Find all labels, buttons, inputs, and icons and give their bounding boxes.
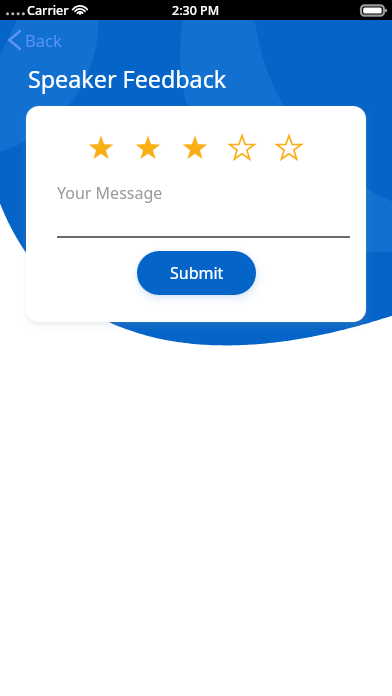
staticText: 2:30 PM bbox=[172, 2, 220, 19]
button[interactable]: Submit bbox=[137, 251, 256, 295]
button[interactable]: Rate star bbox=[276, 135, 302, 161]
staticText: Speaker Feedback bbox=[28, 63, 227, 95]
staticText: Submit bbox=[170, 262, 224, 284]
button[interactable]: Rate star bbox=[229, 135, 255, 161]
button[interactable]: Rate star bbox=[135, 135, 161, 161]
staticText: Carrier bbox=[27, 2, 69, 19]
button[interactable]: Rate star bbox=[88, 135, 114, 161]
staticText: Your Message bbox=[57, 182, 163, 204]
button[interactable]: Back bbox=[8, 29, 62, 51]
staticText: Back bbox=[25, 29, 62, 51]
button[interactable]: Rate star bbox=[182, 135, 208, 161]
